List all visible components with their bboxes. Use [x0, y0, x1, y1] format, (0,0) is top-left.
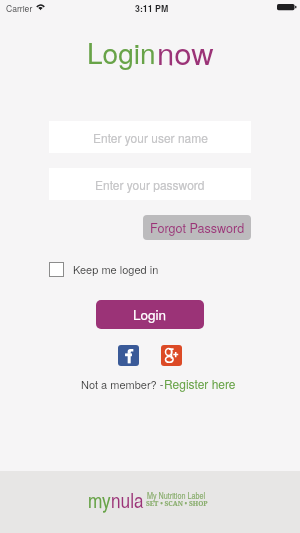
button[interactable]: Keep me loged in — [49, 261, 159, 277]
staticText: Keep me loged in — [73, 261, 159, 277]
staticText: now — [157, 29, 214, 73]
staticText: nula — [111, 485, 144, 514]
staticText: my — [88, 485, 111, 514]
button[interactable]: Forgot Password — [143, 215, 251, 240]
staticText: Not a member? - — [81, 376, 164, 392]
staticText: Enter your user name — [93, 129, 208, 146]
staticText: Enter your password — [95, 176, 205, 193]
staticText: Login — [133, 305, 167, 324]
button[interactable]: Login — [96, 300, 204, 329]
button[interactable]: Register here — [164, 375, 236, 392]
button[interactable]: Sign in with Google Plus — [161, 345, 182, 366]
staticText: Carrier — [6, 2, 33, 14]
button[interactable]: Enter your password — [49, 168, 251, 200]
button[interactable]: Sign in with Facebook — [118, 345, 139, 366]
button[interactable]: Enter your user name — [49, 121, 251, 153]
staticText: 3:11 PM — [135, 2, 169, 15]
staticText: My Nutrition Label — [147, 489, 206, 501]
staticText: SET • SCAN • SHOP — [146, 499, 208, 508]
staticText: Forgot Password — [150, 219, 245, 237]
staticText: Login — [87, 32, 156, 72]
